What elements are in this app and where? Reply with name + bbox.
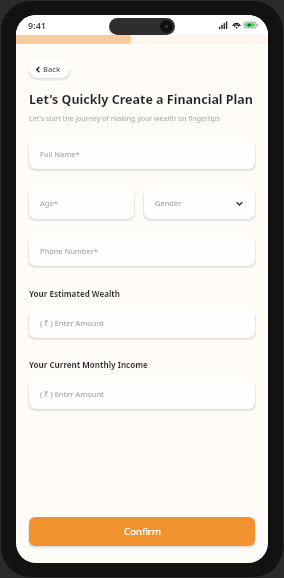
staticText: Back [43, 64, 61, 74]
button[interactable]: Back [29, 60, 70, 78]
button[interactable]: Phone Number* [29, 235, 255, 266]
button[interactable]: Age* [29, 187, 134, 219]
button[interactable]: Gender [144, 187, 255, 219]
button[interactable]: Full Name* [29, 139, 255, 169]
staticText: Let's start the journey of making your w… [29, 114, 220, 124]
staticText: Phone Number* [40, 246, 244, 256]
staticText: 9:41 [28, 19, 46, 31]
staticText: ( ₹ ) Enter Amount [40, 389, 244, 399]
staticText: Your Estimated Wealth [29, 288, 120, 299]
staticText: Your Current Monthly Income [29, 359, 148, 370]
staticText: Full Name* [40, 149, 244, 159]
staticText: Age* [40, 198, 123, 208]
staticText: Confirm [124, 525, 161, 538]
staticText: Gender [155, 198, 235, 208]
staticText: Let's Quickly Create a Financial Plan [29, 91, 253, 108]
staticText: ( ₹ ) Enter Amount [40, 318, 244, 328]
button[interactable]: ( ₹ ) Enter Amount [29, 379, 255, 409]
button[interactable]: Confirm [29, 517, 255, 546]
button[interactable]: ( ₹ ) Enter Amount [29, 308, 255, 338]
